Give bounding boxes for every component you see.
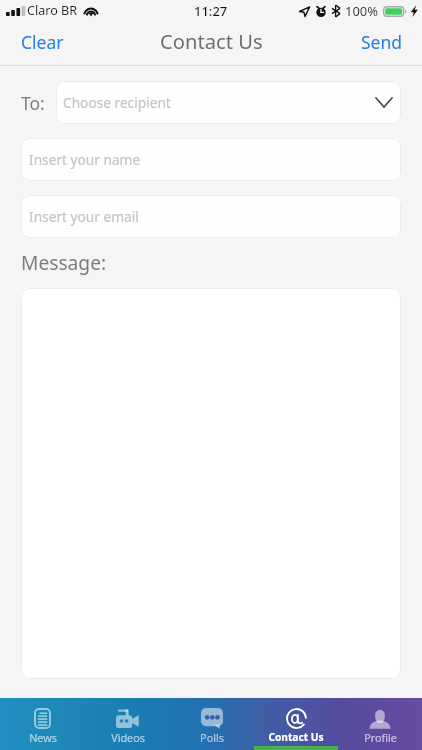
staticText: Message:	[21, 249, 107, 275]
other: Profile	[369, 708, 391, 729]
button[interactable]: Polls	[170, 698, 254, 750]
button[interactable]: News	[0, 698, 85, 750]
staticText: Contact Us	[268, 730, 324, 744]
staticText: Profile	[364, 730, 397, 745]
staticText: Send	[361, 30, 403, 54]
other: Contact Us	[286, 708, 307, 729]
button[interactable]: Choose recipient	[56, 81, 401, 124]
button[interactable]: Insert your name	[21, 138, 401, 181]
button[interactable]: Profile	[338, 698, 422, 750]
button[interactable]: Clear	[0, 24, 85, 65]
staticText: Claro BR	[27, 2, 78, 19]
staticText: Contact Us	[160, 27, 263, 55]
staticText: 11:27	[194, 2, 228, 20]
button[interactable]: Videos	[85, 698, 170, 750]
staticText: Clear	[21, 30, 64, 54]
button[interactable]: Send	[340, 24, 422, 65]
other: News	[34, 708, 51, 729]
button[interactable]: Insert your email	[21, 195, 401, 238]
staticText: Videos	[111, 730, 145, 745]
staticText: 100%	[345, 2, 379, 20]
staticText: Polls	[200, 730, 224, 745]
button[interactable]: Contact Us	[254, 698, 338, 750]
staticText: Insert your email	[29, 207, 139, 226]
other: Polls	[201, 708, 223, 729]
staticText: To:	[21, 91, 45, 115]
staticText: Insert your name	[29, 150, 141, 169]
other: Videos	[116, 709, 139, 728]
staticText: Choose recipient	[63, 93, 171, 112]
staticText: News	[29, 730, 57, 745]
